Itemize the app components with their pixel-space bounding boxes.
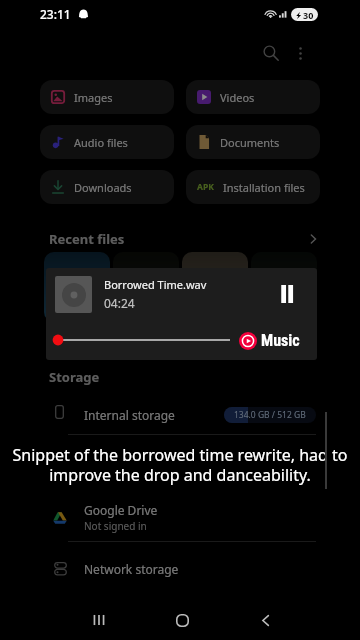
button[interactable]: Pause	[265, 272, 309, 316]
staticText: Internal storage	[84, 407, 175, 423]
button[interactable]: APK	[186, 170, 320, 204]
staticText: Borrowed Time.wav	[104, 277, 207, 292]
button[interactable]	[113, 252, 179, 322]
staticText: Music	[261, 331, 300, 350]
button[interactable]	[44, 252, 110, 322]
button[interactable]: Search	[251, 33, 291, 73]
staticText: Installation files	[223, 180, 305, 195]
staticText: Storage	[49, 368, 100, 386]
button[interactable]: Recents	[77, 600, 121, 640]
staticText: 23:11	[40, 6, 71, 22]
staticText: Recent files	[49, 230, 125, 248]
button[interactable]: Back	[243, 600, 287, 640]
button[interactable]: Documents	[186, 125, 320, 159]
staticText: Google Drive	[84, 502, 158, 518]
staticText: APK	[197, 181, 214, 193]
button[interactable]: Downloads	[40, 170, 174, 204]
staticText: Images	[74, 90, 113, 105]
staticText: Snippet of the borrowed time rewrite, ha…	[6, 444, 354, 485]
button[interactable]: Internal storage	[40, 398, 318, 431]
button[interactable]: Home	[160, 600, 204, 640]
staticText: 134.0 GB / 512 GB	[234, 409, 306, 421]
staticText: Downloads	[74, 180, 132, 195]
staticText: 04:24	[104, 295, 135, 311]
staticText: Not signed in	[84, 519, 147, 533]
button[interactable]: Videos	[186, 80, 320, 114]
button[interactable]: Google Drive	[40, 497, 318, 539]
button[interactable]: Audio files	[40, 125, 174, 159]
button[interactable]	[182, 252, 248, 322]
staticText: Audio files	[74, 135, 128, 150]
staticText: Network storage	[84, 561, 179, 577]
button[interactable]: Images	[40, 80, 174, 114]
staticText: Videos	[220, 90, 255, 105]
button[interactable]: Network storage	[40, 552, 318, 585]
button[interactable]: Recent files	[40, 226, 320, 252]
button[interactable]: More options	[282, 33, 318, 73]
staticText: 30	[303, 9, 314, 21]
button[interactable]	[251, 252, 317, 322]
staticText: Documents	[220, 135, 280, 150]
